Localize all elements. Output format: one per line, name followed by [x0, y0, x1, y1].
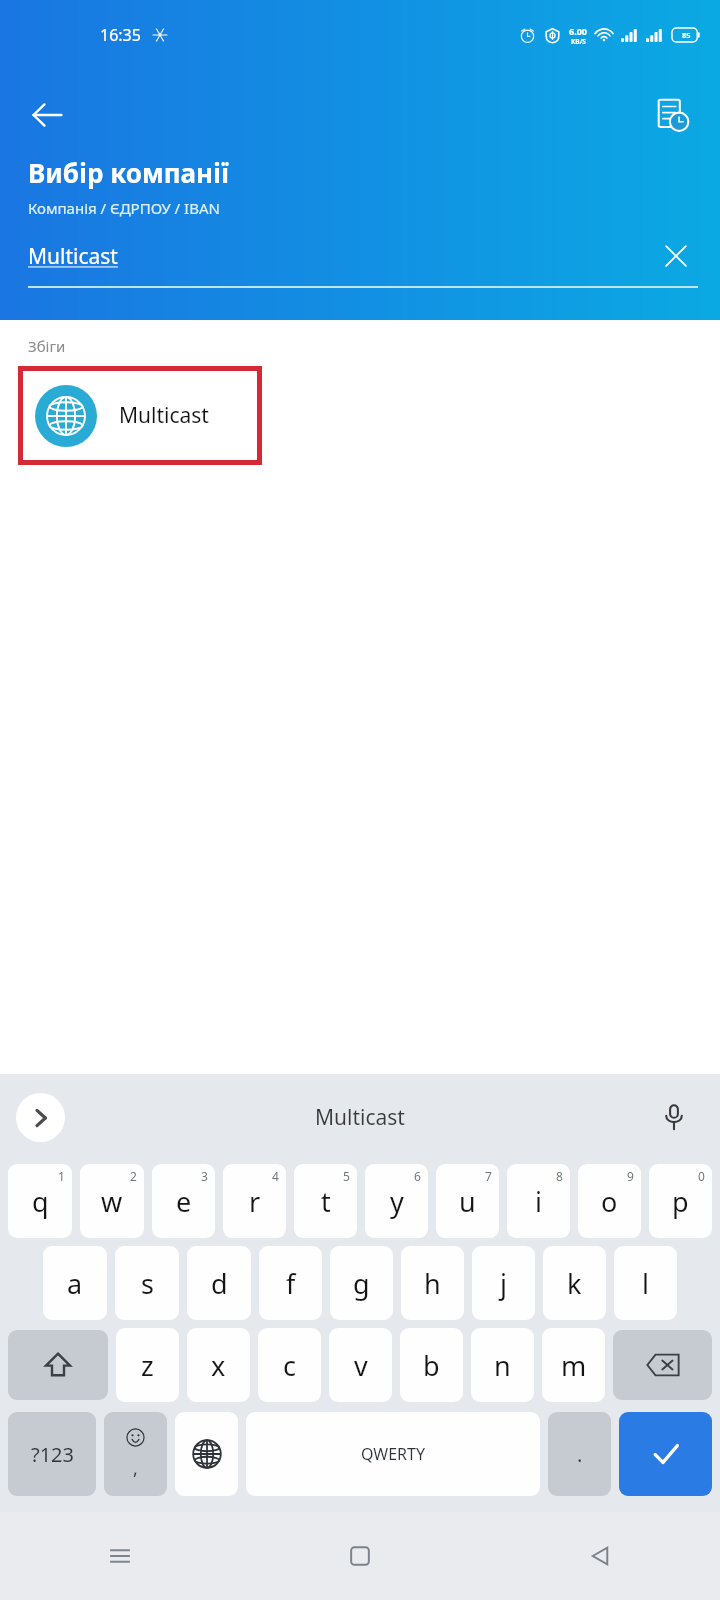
staticText: o	[601, 1183, 618, 1220]
button[interactable]: a	[43, 1246, 107, 1320]
button[interactable]: ?123	[8, 1412, 96, 1496]
button[interactable]: Back	[480, 1512, 720, 1600]
staticText: f	[286, 1265, 296, 1302]
staticText: Multicast	[28, 242, 118, 271]
staticText: e	[176, 1183, 192, 1220]
staticText: 16:35	[100, 24, 141, 46]
staticText: 5	[343, 1168, 350, 1184]
staticText: w	[101, 1183, 123, 1220]
staticText: ,	[133, 1456, 138, 1481]
staticText: Вибір компанії	[28, 155, 229, 190]
staticText: 85	[682, 30, 691, 40]
button[interactable]: f	[259, 1246, 322, 1320]
staticText: KB/S	[571, 37, 586, 46]
staticText: Компанія / ЄДРПОУ / IBAN	[28, 198, 220, 218]
staticText: j	[500, 1265, 507, 1302]
staticText: u	[459, 1183, 476, 1220]
staticText: d	[211, 1265, 228, 1302]
button[interactable]: v	[329, 1328, 392, 1402]
button[interactable]: Shift	[8, 1330, 108, 1400]
staticText: 1	[58, 1168, 65, 1184]
staticText: 7	[485, 1168, 492, 1184]
staticText: v	[354, 1347, 368, 1384]
button[interactable]: c	[258, 1328, 321, 1402]
button[interactable]: u	[436, 1164, 499, 1238]
button[interactable]: s	[115, 1246, 179, 1320]
button[interactable]: j	[472, 1246, 535, 1320]
button[interactable]: k	[543, 1246, 606, 1320]
staticText: a	[67, 1265, 83, 1302]
button[interactable]: Emoji and comma	[104, 1412, 167, 1496]
staticText: x	[211, 1347, 226, 1384]
staticText: n	[494, 1347, 511, 1384]
staticText: 8	[556, 1168, 563, 1184]
staticText: s	[141, 1265, 154, 1302]
staticText: g	[353, 1265, 370, 1302]
staticText: b	[423, 1347, 440, 1384]
staticText: 0	[698, 1168, 705, 1184]
button[interactable]: x	[187, 1328, 250, 1402]
button[interactable]: y	[365, 1164, 428, 1238]
staticText: 6	[414, 1168, 421, 1184]
button[interactable]: Backspace	[613, 1330, 712, 1400]
button[interactable]: q	[8, 1164, 72, 1238]
button[interactable]: n	[471, 1328, 534, 1402]
button[interactable]: Multicast	[315, 1103, 405, 1132]
button[interactable]: g	[330, 1246, 393, 1320]
button[interactable]: b	[400, 1328, 463, 1402]
button[interactable]: h	[401, 1246, 464, 1320]
button[interactable]: l	[614, 1246, 677, 1320]
staticText: 3	[201, 1168, 208, 1184]
button[interactable]: o	[578, 1164, 641, 1238]
button[interactable]: Done	[619, 1412, 712, 1496]
staticText: .	[577, 1441, 583, 1468]
staticText: 6.00	[569, 25, 587, 37]
staticText: 4	[272, 1168, 279, 1184]
button[interactable]: Recents	[0, 1512, 240, 1600]
staticText: q	[32, 1183, 49, 1220]
button[interactable]: z	[116, 1328, 179, 1402]
staticText: p	[672, 1183, 689, 1220]
button[interactable]: Back	[20, 88, 74, 142]
button[interactable]: p	[649, 1164, 712, 1238]
staticText: h	[424, 1265, 441, 1302]
button[interactable]: Clear text	[654, 234, 698, 278]
button[interactable]: Multicast	[23, 371, 257, 460]
button[interactable]: Expand	[16, 1093, 65, 1142]
staticText: 2	[130, 1168, 137, 1184]
staticText: Multicast	[119, 401, 209, 430]
button[interactable]: w	[80, 1164, 144, 1238]
button[interactable]: t	[294, 1164, 357, 1238]
staticText: i	[535, 1183, 542, 1220]
staticText: y	[390, 1183, 404, 1220]
staticText: t	[321, 1183, 331, 1220]
button[interactable]: Voice input	[652, 1095, 696, 1139]
button[interactable]: r	[223, 1164, 286, 1238]
button[interactable]: Home	[240, 1512, 480, 1600]
staticText: l	[642, 1265, 649, 1302]
button[interactable]: i	[507, 1164, 570, 1238]
staticText: z	[141, 1347, 154, 1384]
button[interactable]: d	[187, 1246, 251, 1320]
staticText: m	[561, 1347, 587, 1384]
staticText: 9	[627, 1168, 634, 1184]
button[interactable]: History	[646, 88, 700, 142]
button[interactable]: m	[542, 1328, 605, 1402]
button[interactable]: QWERTY	[246, 1412, 540, 1496]
button[interactable]: e	[152, 1164, 215, 1238]
staticText: Збіги	[28, 336, 66, 356]
staticText: QWERTY	[361, 1443, 426, 1465]
button[interactable]: Change language	[175, 1412, 238, 1496]
staticText: k	[567, 1265, 582, 1302]
staticText: ?123	[31, 1441, 74, 1468]
button[interactable]: .	[548, 1412, 611, 1496]
staticText: r	[249, 1183, 261, 1220]
staticText: c	[283, 1347, 296, 1384]
